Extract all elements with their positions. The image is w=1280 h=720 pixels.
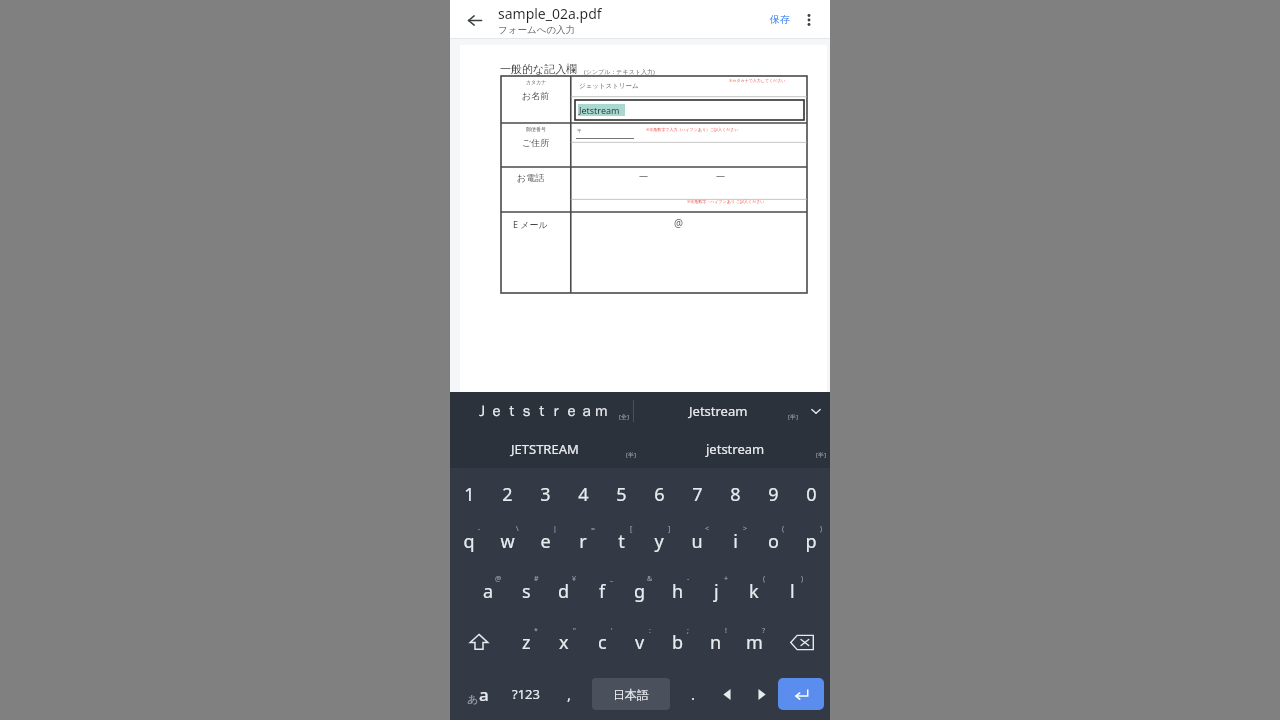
button[interactable]: 0 bbox=[792, 472, 830, 516]
button[interactable]: Move cursor left bbox=[710, 668, 744, 720]
button[interactable]: 日本語 bbox=[592, 678, 670, 710]
button[interactable]: t bbox=[602, 516, 640, 566]
staticText: f bbox=[599, 579, 606, 604]
button[interactable]: , bbox=[552, 668, 586, 720]
button[interactable]: 1 bbox=[450, 472, 488, 516]
button[interactable]: k bbox=[735, 566, 773, 616]
button[interactable]: m bbox=[735, 616, 773, 668]
staticText: 2 bbox=[502, 482, 513, 507]
button[interactable]: Enter bbox=[778, 678, 824, 710]
button[interactable]: 8 bbox=[716, 472, 754, 516]
staticText: 4 bbox=[578, 482, 589, 507]
staticText: y bbox=[654, 529, 664, 554]
button[interactable]: q bbox=[450, 516, 488, 566]
staticText: E メール bbox=[513, 218, 548, 230]
staticText: ※半角数字で入力（ハイフンあり）ご記入ください bbox=[646, 127, 739, 132]
button[interactable]: r bbox=[564, 516, 602, 566]
staticText: t bbox=[618, 529, 625, 554]
button[interactable]: Back bbox=[458, 4, 490, 36]
staticText: ; bbox=[687, 626, 689, 636]
staticText: u bbox=[691, 529, 703, 554]
button[interactable]: h bbox=[659, 566, 697, 616]
button[interactable]: c bbox=[583, 616, 621, 668]
button[interactable]: w bbox=[488, 516, 526, 566]
button[interactable]: 5 bbox=[602, 472, 640, 516]
button[interactable]: d bbox=[545, 566, 583, 616]
button[interactable]: Jetstream bbox=[634, 392, 802, 430]
staticText: 〒 bbox=[577, 127, 583, 135]
staticText: 9 bbox=[768, 482, 779, 507]
staticText: ! bbox=[725, 626, 727, 636]
staticText: a bbox=[479, 683, 489, 706]
button[interactable]: x bbox=[545, 616, 583, 668]
staticText: jetstream bbox=[706, 440, 765, 458]
button[interactable]: b bbox=[659, 616, 697, 668]
button[interactable]: v bbox=[621, 616, 659, 668]
staticText: # bbox=[534, 574, 539, 584]
staticText: + bbox=[724, 574, 729, 584]
staticText: [全] bbox=[619, 413, 629, 421]
staticText: お名前 bbox=[522, 90, 550, 101]
staticText: c bbox=[598, 630, 607, 655]
staticText: p bbox=[805, 529, 817, 554]
staticText: — bbox=[639, 169, 649, 181]
button[interactable]: 7 bbox=[678, 472, 716, 516]
button[interactable]: More options bbox=[794, 5, 824, 35]
button[interactable]: Jetstream bbox=[575, 100, 804, 120]
button[interactable]: 2 bbox=[488, 472, 526, 516]
staticText: ご住所 bbox=[522, 137, 550, 148]
button[interactable]: e bbox=[526, 516, 564, 566]
button[interactable]: Move cursor right bbox=[744, 668, 778, 720]
staticText: l bbox=[790, 579, 795, 604]
staticText: 保存 bbox=[770, 13, 790, 26]
button[interactable]: Expand suggestions bbox=[802, 392, 830, 430]
staticText: sample_02a.pdf bbox=[498, 4, 602, 23]
button[interactable]: jetstream bbox=[640, 430, 830, 468]
button[interactable]: y bbox=[640, 516, 678, 566]
button[interactable]: Backspace bbox=[773, 616, 830, 668]
button[interactable]: o bbox=[754, 516, 792, 566]
button[interactable]: . bbox=[676, 668, 710, 720]
staticText: e bbox=[540, 529, 551, 554]
staticText: Ｊｅｔｓｔｒｅａｍ bbox=[474, 402, 609, 421]
button[interactable]: Shift bbox=[450, 616, 507, 668]
button[interactable]: u bbox=[678, 516, 716, 566]
staticText: b bbox=[672, 630, 684, 655]
button[interactable]: 9 bbox=[754, 472, 792, 516]
button[interactable]: l bbox=[773, 566, 811, 616]
staticText: j bbox=[714, 579, 719, 604]
button[interactable]: 6 bbox=[640, 472, 678, 516]
button[interactable]: JETSTREAM bbox=[450, 430, 640, 468]
staticText: [ bbox=[630, 524, 633, 534]
button[interactable]: Ｊｅｔｓｔｒｅａｍ bbox=[450, 392, 633, 430]
button[interactable]: s bbox=[507, 566, 545, 616]
button[interactable]: g bbox=[621, 566, 659, 616]
button[interactable]: f bbox=[583, 566, 621, 616]
staticText: o bbox=[768, 529, 779, 554]
staticText: 3 bbox=[540, 482, 551, 507]
staticText: 0 bbox=[806, 482, 817, 507]
staticText: 郵便番号 bbox=[526, 126, 546, 132]
button[interactable]: 3 bbox=[526, 472, 564, 516]
staticText: i bbox=[733, 529, 738, 554]
staticText: ? bbox=[762, 626, 766, 636]
button[interactable]: n bbox=[697, 616, 735, 668]
staticText: ] bbox=[668, 524, 671, 534]
button[interactable]: Switch input language bbox=[456, 668, 500, 720]
staticText: ¥ bbox=[572, 574, 577, 584]
button[interactable]: a bbox=[469, 566, 507, 616]
button[interactable]: ?123 bbox=[500, 668, 552, 720]
button[interactable]: i bbox=[716, 516, 754, 566]
staticText: [半] bbox=[816, 451, 826, 459]
staticText: k bbox=[749, 579, 759, 604]
button[interactable]: 保存 bbox=[770, 13, 790, 26]
staticText: フォームへの入力 bbox=[498, 24, 576, 36]
staticText: 8 bbox=[730, 482, 741, 507]
button[interactable]: j bbox=[697, 566, 735, 616]
staticText: w bbox=[500, 529, 515, 554]
button[interactable]: 4 bbox=[564, 472, 602, 516]
button[interactable]: z bbox=[507, 616, 545, 668]
staticText: ' bbox=[611, 626, 613, 636]
staticText: r bbox=[579, 529, 587, 554]
button[interactable]: p bbox=[792, 516, 830, 566]
